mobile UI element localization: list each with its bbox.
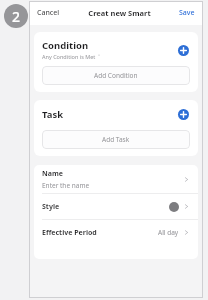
button[interactable]: Name	[34, 165, 198, 193]
button[interactable]: Add Task	[42, 130, 190, 149]
button[interactable]: Cancel	[36, 5, 61, 21]
staticText: Style	[42, 202, 60, 212]
staticText: Condition	[42, 39, 89, 52]
button[interactable]: Add condition	[176, 43, 190, 57]
staticText: All day	[158, 228, 179, 237]
staticText: Name	[42, 169, 63, 179]
staticText: Effective Period	[42, 228, 97, 238]
staticText: 2	[12, 7, 21, 26]
staticText: Any Condition is Met ˅	[42, 53, 100, 60]
staticText: Add Condition	[94, 71, 138, 80]
button[interactable]: Style	[34, 194, 198, 219]
button[interactable]: Save	[178, 5, 196, 21]
button[interactable]: Add Condition	[42, 66, 190, 85]
staticText: Save	[179, 8, 195, 18]
button[interactable]: Effective Period	[34, 220, 198, 245]
staticText: Creat new Smart	[88, 8, 151, 18]
staticText: Task	[42, 108, 64, 121]
button[interactable]: Add task	[176, 107, 190, 121]
staticText: Cancel	[37, 8, 60, 18]
staticText: Enter the name	[42, 181, 90, 190]
staticText: Add Task	[102, 135, 130, 144]
